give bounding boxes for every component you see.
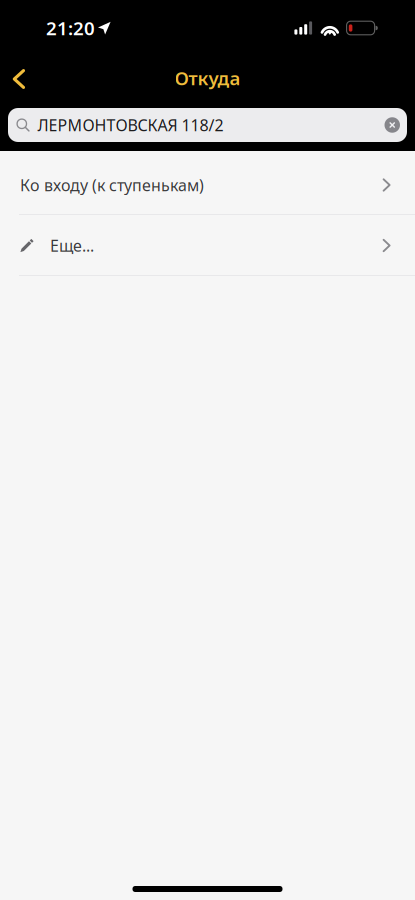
staticText: Ко входу (к ступенькам) bbox=[20, 174, 204, 196]
button[interactable]: Ко входу (к ступенькам) bbox=[0, 151, 415, 214]
button[interactable]: Назад bbox=[0, 54, 38, 100]
staticText: ЛЕРМОНТОВСКАЯ 118/2 bbox=[37, 114, 223, 136]
button[interactable]: Очистить текст bbox=[384, 117, 400, 133]
staticText: Откуда bbox=[174, 66, 240, 90]
staticText: 21:20 bbox=[46, 16, 95, 40]
button[interactable]: Еще... bbox=[0, 215, 415, 275]
staticText: Еще... bbox=[50, 235, 94, 256]
